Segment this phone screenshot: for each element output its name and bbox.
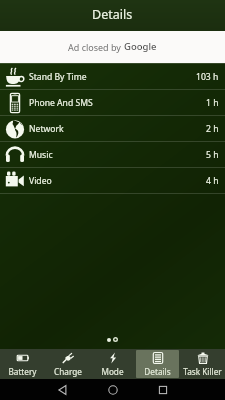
button[interactable]: Video bbox=[0, 168, 225, 193]
button[interactable]: Mode bbox=[91, 350, 134, 378]
button[interactable]: Task Killer bbox=[181, 350, 224, 378]
button[interactable]: Music bbox=[0, 142, 225, 167]
other: Back bbox=[57, 384, 69, 396]
staticText: 4 h bbox=[206, 175, 219, 187]
staticText: 5 h bbox=[206, 149, 219, 161]
other: Recents bbox=[157, 384, 169, 396]
button[interactable]: Phone And SMS bbox=[0, 90, 225, 115]
other: Home bbox=[107, 384, 119, 396]
staticText: 103 h bbox=[196, 71, 219, 83]
staticText: 2 h bbox=[206, 123, 219, 135]
staticText: Details bbox=[92, 6, 133, 23]
staticText: Stand By Time bbox=[29, 71, 87, 83]
staticText: Task Killer bbox=[183, 366, 222, 377]
staticText: Ad closed by bbox=[68, 41, 124, 53]
staticText: Charge bbox=[54, 366, 82, 377]
staticText: Music bbox=[29, 149, 53, 161]
button[interactable]: Details bbox=[136, 350, 179, 378]
staticText: Details bbox=[144, 366, 171, 377]
staticText: Phone And SMS bbox=[29, 97, 93, 109]
staticText: Network bbox=[29, 123, 64, 135]
button[interactable]: Battery bbox=[1, 350, 44, 378]
staticText: Video bbox=[29, 175, 52, 187]
button[interactable]: Charge bbox=[46, 350, 89, 378]
staticText: Battery bbox=[8, 366, 37, 377]
button[interactable]: Network bbox=[0, 116, 225, 141]
button[interactable]: Stand By Time bbox=[0, 64, 225, 89]
staticText: Google bbox=[124, 40, 157, 53]
staticText: Mode bbox=[101, 366, 124, 377]
staticText: 1 h bbox=[206, 97, 219, 109]
